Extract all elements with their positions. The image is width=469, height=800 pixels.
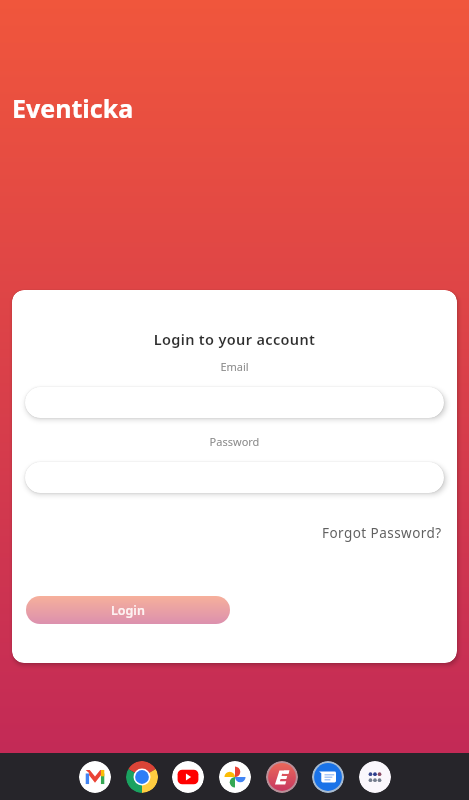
button[interactable]: Messages bbox=[312, 761, 344, 793]
staticText: Forgot Password? bbox=[322, 524, 442, 542]
staticText: Eventicka bbox=[12, 91, 134, 125]
staticText: Password bbox=[12, 434, 457, 449]
button[interactable]: YouTube bbox=[172, 761, 204, 793]
button[interactable]: Photos bbox=[219, 761, 251, 793]
button[interactable]: Eventicka bbox=[266, 761, 298, 793]
staticText: Login bbox=[111, 602, 145, 619]
button[interactable]: All apps bbox=[359, 761, 391, 793]
button[interactable]: Chrome bbox=[126, 761, 158, 793]
button[interactable]: Gmail bbox=[79, 761, 111, 793]
button[interactable]: Login bbox=[26, 596, 230, 624]
button[interactable]: Forgot Password? bbox=[309, 518, 457, 548]
staticText: Login to your account bbox=[12, 329, 457, 349]
staticText: Email bbox=[12, 359, 457, 374]
